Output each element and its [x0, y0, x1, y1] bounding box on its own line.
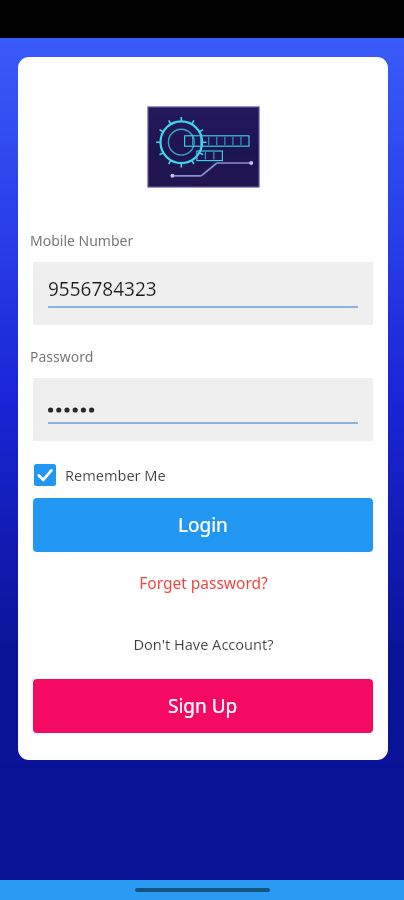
button[interactable]: Sign Up [33, 679, 373, 733]
button[interactable]: Login [33, 498, 373, 552]
button[interactable]: 9556784323 [33, 262, 373, 325]
staticText: Remember Me [65, 465, 166, 485]
button[interactable]: Remember Me [33, 461, 167, 489]
button[interactable]: Forget password? [135, 568, 272, 597]
staticText: Mobile Number [30, 231, 134, 250]
button[interactable] [33, 378, 373, 441]
staticText: Password [30, 347, 94, 366]
staticText: Sign Up [168, 693, 238, 719]
staticText: Login [178, 512, 228, 538]
button[interactable]: Don't Have Account? [129, 630, 278, 658]
staticText: 9556784323 [48, 276, 157, 302]
